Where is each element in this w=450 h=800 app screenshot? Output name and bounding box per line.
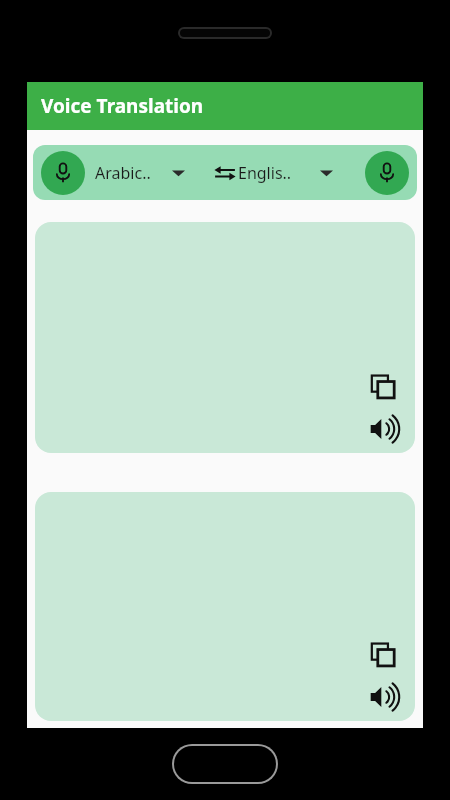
staticText: Arabic.. <box>95 162 151 184</box>
button[interactable]: Swap languages <box>212 160 238 186</box>
button[interactable]: Play audio <box>365 411 401 447</box>
staticText: Voice Translation <box>41 93 204 119</box>
button[interactable]: Copy text <box>365 369 401 405</box>
button[interactable]: Record source language <box>41 151 85 195</box>
button[interactable]: Arabic.. <box>85 145 212 200</box>
button[interactable]: Copy text <box>35 492 415 721</box>
button[interactable]: Copy text <box>35 222 415 453</box>
staticText: Englis.. <box>238 162 292 184</box>
button[interactable]: Record target language <box>365 151 409 195</box>
button[interactable]: Copy text <box>365 637 401 673</box>
button[interactable]: Englis.. <box>238 145 365 200</box>
button[interactable]: Play audio <box>365 679 401 715</box>
